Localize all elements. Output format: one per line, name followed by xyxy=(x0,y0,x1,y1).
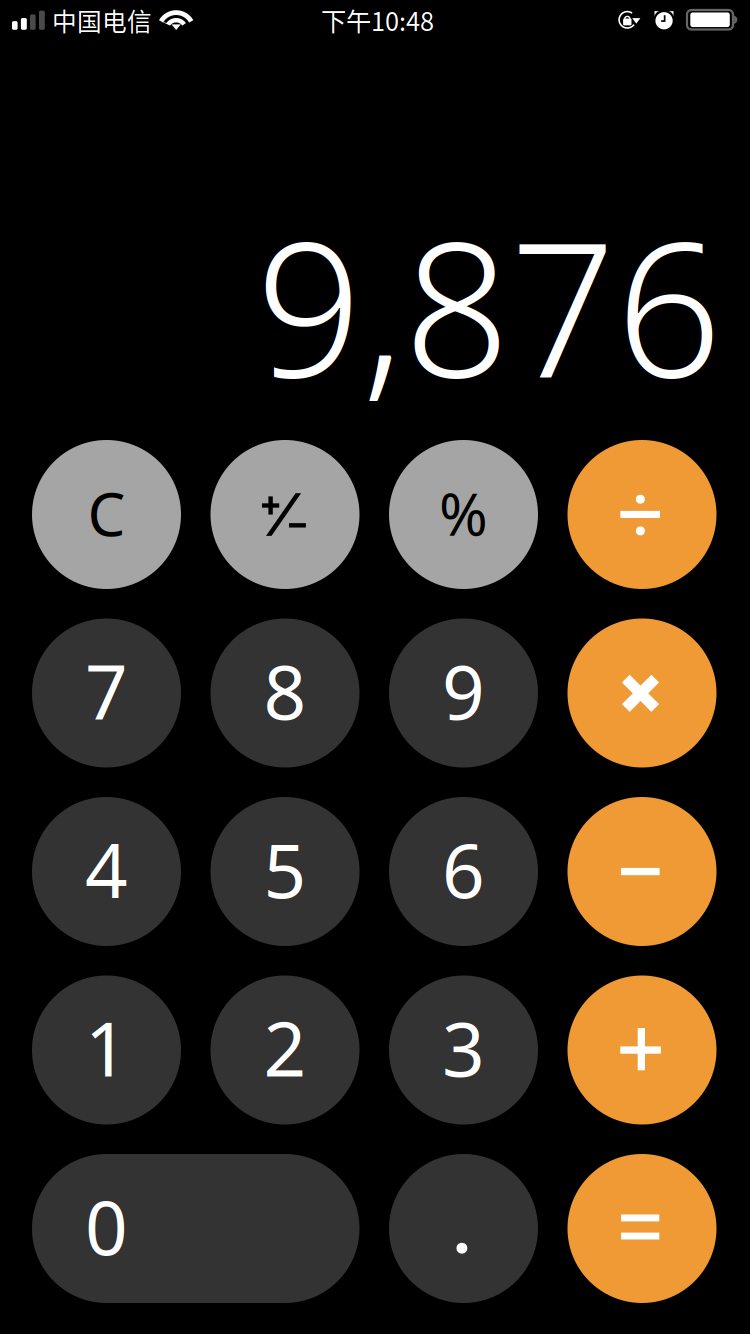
button[interactable]: Divide xyxy=(567,440,716,589)
staticText: 5 xyxy=(263,819,306,919)
button[interactable]: Multiply xyxy=(567,618,716,767)
button[interactable]: % xyxy=(389,440,538,589)
button[interactable]: Plus minus xyxy=(210,440,359,589)
button[interactable]: 2 xyxy=(210,975,359,1124)
button[interactable]: 8 xyxy=(210,618,359,767)
staticText: 3 xyxy=(442,998,485,1097)
button[interactable]: 4 xyxy=(32,797,181,946)
staticText: 0 xyxy=(85,1176,128,1276)
staticText: 中国电信 xyxy=(52,2,152,38)
button[interactable]: Plus xyxy=(567,975,716,1124)
button[interactable]: Decimal point xyxy=(389,1154,538,1303)
staticText: 下午10:48 xyxy=(321,1,434,38)
button[interactable]: 0 xyxy=(32,1154,359,1303)
button[interactable]: C xyxy=(32,440,181,589)
staticText: % xyxy=(439,474,488,552)
staticText: 4 xyxy=(85,819,128,919)
button[interactable]: 3 xyxy=(389,975,538,1124)
button[interactable]: 1 xyxy=(32,975,181,1124)
staticText: C xyxy=(87,473,125,553)
button[interactable]: 7 xyxy=(32,618,181,767)
staticText: 9 xyxy=(442,641,485,740)
button[interactable]: 9 xyxy=(389,618,538,767)
staticText: 2 xyxy=(263,998,306,1097)
staticText: 9,876 xyxy=(256,182,722,428)
button[interactable]: 6 xyxy=(389,797,538,946)
staticText: 8 xyxy=(263,641,306,740)
button[interactable]: Minus xyxy=(567,797,716,946)
staticText: 7 xyxy=(85,641,128,740)
staticText: 1 xyxy=(85,998,128,1097)
button[interactable]: 5 xyxy=(210,797,359,946)
button[interactable]: Equals xyxy=(567,1154,716,1303)
staticText: 6 xyxy=(442,819,485,919)
